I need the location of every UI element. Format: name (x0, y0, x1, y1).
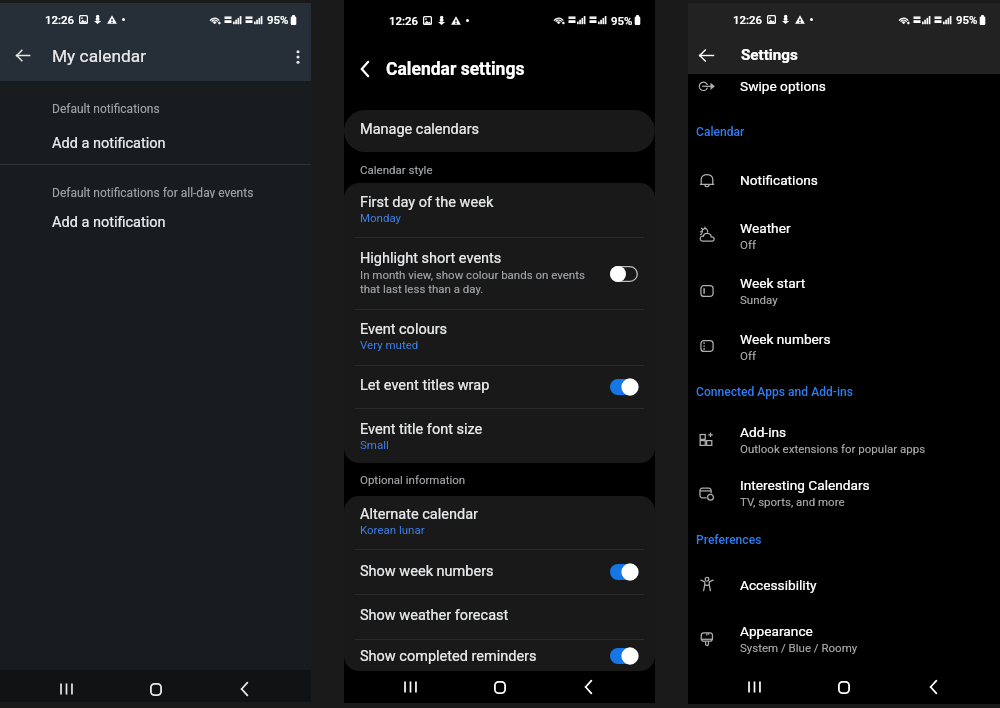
button[interactable]: Notifications (688, 155, 1000, 205)
staticText: Preferences (696, 533, 762, 547)
button[interactable]: Toggle (610, 648, 638, 664)
button[interactable]: Manage calendars (344, 110, 655, 152)
button[interactable]: Back (866, 667, 1000, 707)
button[interactable]: Add-ins (688, 415, 1000, 463)
staticText: Show completed reminders (360, 648, 537, 665)
button[interactable]: Show completed reminders (344, 640, 655, 671)
button[interactable]: Home (477, 671, 522, 703)
staticText: Show weather forecast (360, 607, 509, 624)
staticText: 95% (956, 13, 978, 26)
staticText: Interesting Calendars (740, 477, 870, 493)
button[interactable]: Navigate up (0, 36, 44, 81)
staticText: Very muted (360, 338, 419, 351)
staticText: Settings (741, 46, 798, 64)
staticText: Add a notification (52, 135, 166, 152)
button[interactable]: First day of the week (344, 183, 655, 237)
button[interactable]: Event title font size (344, 409, 655, 463)
staticText: 12:26 (389, 14, 418, 27)
button[interactable]: More options (284, 36, 311, 81)
staticText: First day of the week (360, 194, 494, 211)
staticText: Alternate calendar (360, 506, 478, 523)
button[interactable]: Navigate up (344, 40, 386, 98)
staticText: Connected Apps and Add-ins (696, 385, 853, 399)
staticText: Notifications (740, 172, 818, 188)
staticText: Outlook extensions for popular apps (740, 442, 926, 455)
button[interactable]: Recent apps (344, 671, 477, 703)
staticText: My calendar (52, 46, 146, 66)
staticText: Off (740, 238, 756, 251)
button[interactable]: Show week numbers (344, 550, 655, 594)
staticText: Optional information (360, 473, 466, 486)
button[interactable]: Swipe options (688, 74, 1000, 98)
staticText: Add-ins (740, 424, 787, 440)
staticText: Small (360, 438, 389, 451)
button[interactable]: Navigate up (688, 36, 725, 74)
button[interactable]: Highlight short events (344, 238, 655, 309)
staticText: 12:26 (733, 13, 762, 26)
staticText: Default notifications (52, 102, 160, 114)
staticText: System / Blue / Roomy (740, 641, 858, 654)
staticText: 12:26 (45, 13, 74, 26)
staticText: Let event titles wrap (360, 377, 490, 394)
staticText: Off (740, 349, 756, 362)
button[interactable]: Event colours (344, 310, 655, 365)
staticText: Week numbers (740, 331, 831, 347)
button[interactable]: Interesting Calendars (688, 468, 1000, 517)
staticText: Calendar style (360, 163, 433, 176)
staticText: Calendar settings (386, 59, 525, 80)
staticText: Calendar (696, 125, 745, 139)
staticText: Accessibility (740, 577, 817, 593)
staticText: 95% (611, 14, 633, 27)
staticText: 95% (267, 13, 289, 26)
button[interactable]: Back (522, 671, 655, 703)
button[interactable]: Week start (688, 263, 1000, 318)
staticText: Sunday (740, 293, 778, 306)
staticText: Korean lunar (360, 523, 425, 536)
button[interactable]: Show weather forecast (344, 595, 655, 639)
button[interactable]: Add a notification (0, 128, 311, 159)
staticText: Swipe options (740, 78, 826, 94)
button[interactable]: Add a notification (0, 207, 311, 238)
staticText: Event title font size (360, 421, 483, 438)
button[interactable]: Week numbers (688, 323, 1000, 369)
button[interactable]: Toggle (610, 266, 638, 282)
button[interactable]: Home (133, 673, 178, 705)
staticText: Event colours (360, 321, 448, 338)
staticText: Manage calendars (360, 121, 480, 138)
button[interactable]: Let event titles wrap (344, 366, 655, 408)
staticText: Appearance (740, 623, 813, 639)
staticText: Monday (360, 211, 402, 224)
staticText: Weather (740, 220, 791, 236)
staticText: Highlight short events (360, 250, 502, 267)
button[interactable]: Appearance (688, 612, 1000, 664)
button[interactable]: Home (821, 667, 866, 707)
button[interactable]: Accessibility (688, 563, 1000, 607)
button[interactable]: Alternate calendar (344, 496, 655, 549)
button[interactable]: Back (178, 673, 311, 705)
button[interactable]: Toggle (610, 564, 638, 580)
button[interactable]: Recent apps (688, 667, 821, 707)
button[interactable]: Recent apps (0, 673, 133, 705)
staticText: Default notifications for all-day events (52, 186, 254, 198)
staticText: In month view, show colour bands on even… (360, 268, 585, 296)
staticText: Week start (740, 275, 806, 291)
staticText: Show week numbers (360, 563, 494, 580)
staticText: TV, sports, and more (740, 495, 845, 508)
button[interactable]: Toggle (610, 379, 638, 395)
staticText: Add a notification (52, 214, 166, 231)
button[interactable]: Weather (688, 207, 1000, 263)
